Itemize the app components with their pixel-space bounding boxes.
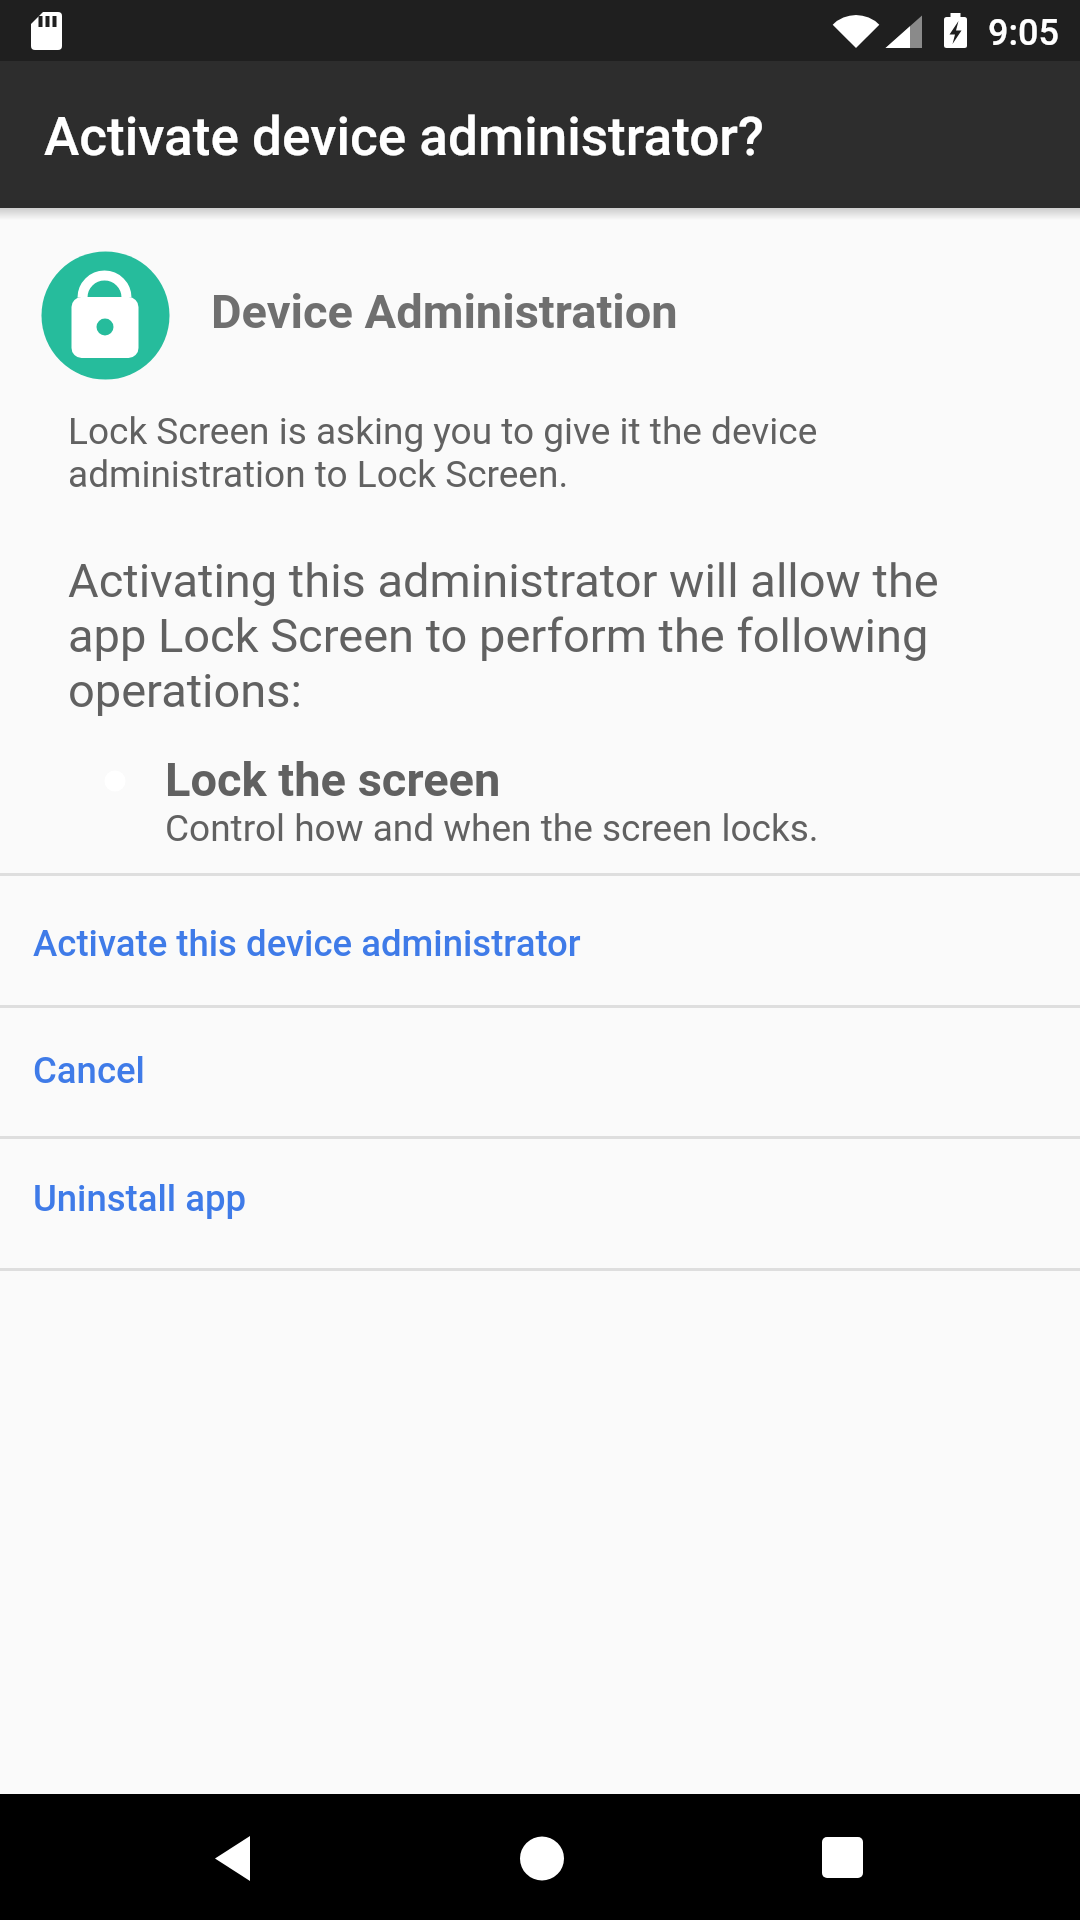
staticText: Lock the screen: [165, 752, 501, 807]
staticText: Cancel: [33, 1049, 145, 1092]
button[interactable]: Activate this device administrator: [0, 876, 1080, 1005]
staticText: Activate device administrator?: [44, 106, 764, 168]
staticText: Uninstall app: [33, 1177, 247, 1220]
button[interactable]: [475, 1794, 615, 1920]
button[interactable]: [170, 1794, 310, 1920]
staticText: Activate this device administrator: [33, 922, 581, 965]
staticText: Control how and when the screen locks.: [165, 807, 819, 850]
staticText: Activating this administrator will allow…: [68, 553, 939, 718]
button[interactable]: Cancel: [0, 1008, 1080, 1137]
staticText: Lock Screen is asking you to give it the…: [68, 410, 818, 496]
staticText: Device Administration: [211, 284, 678, 339]
button[interactable]: Uninstall app: [0, 1139, 1080, 1268]
staticText: 9:05: [988, 12, 1059, 54]
button[interactable]: [780, 1794, 920, 1920]
